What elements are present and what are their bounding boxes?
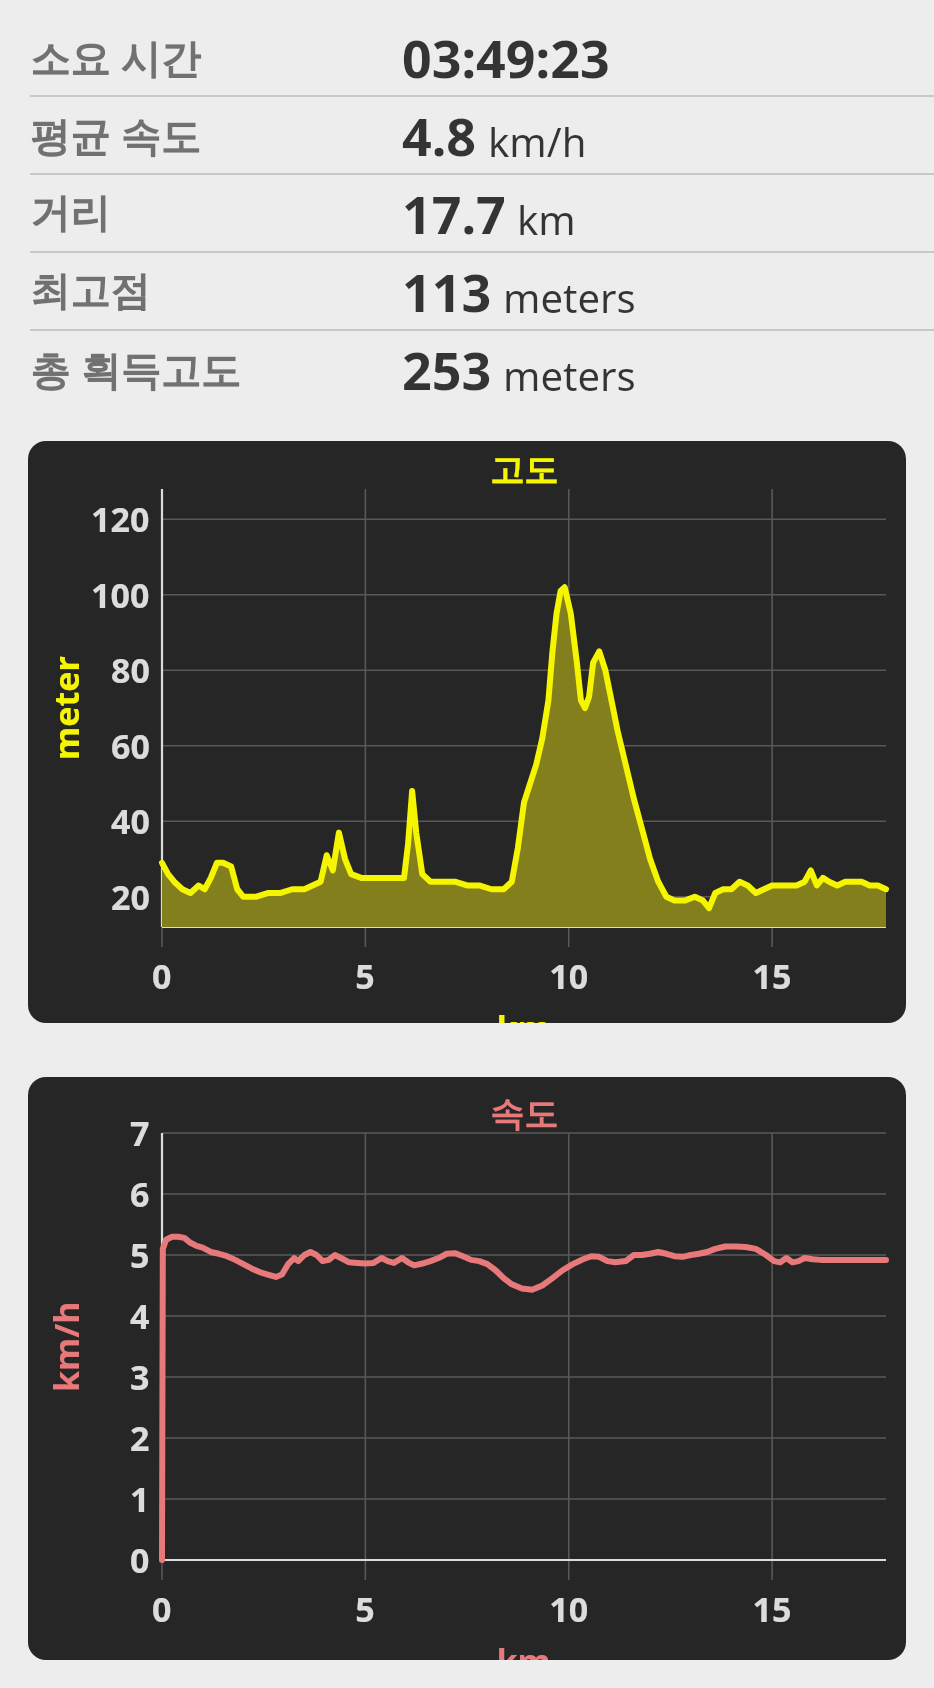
button[interactable]: 평균 속도 — [0, 97, 934, 173]
button[interactable]: 총 획득고도 — [0, 331, 934, 407]
button[interactable]: 속도 차트 — [28, 1077, 906, 1660]
button[interactable]: 고도 차트 — [28, 441, 906, 1023]
staticText: 최고점 — [30, 266, 150, 316]
staticText: 소요 시간 — [30, 30, 201, 85]
staticText: 거리 — [30, 188, 110, 238]
staticText: 253 — [402, 334, 492, 405]
staticText: 평균 속도 — [30, 108, 201, 163]
button[interactable]: 소요 시간 — [0, 19, 934, 95]
staticText: meters — [503, 270, 636, 324]
button[interactable]: 거리 — [0, 175, 934, 251]
staticText: 113 — [402, 256, 492, 327]
staticText: 17.7 — [402, 178, 506, 249]
staticText: meters — [503, 348, 636, 402]
staticText: km/h — [488, 114, 587, 168]
staticText: km — [517, 192, 576, 246]
staticText: 03:49:23 — [402, 22, 610, 93]
staticText: 총 획득고도 — [30, 342, 241, 397]
staticText: 4.8 — [402, 100, 477, 171]
button[interactable]: 최고점 — [0, 253, 934, 329]
